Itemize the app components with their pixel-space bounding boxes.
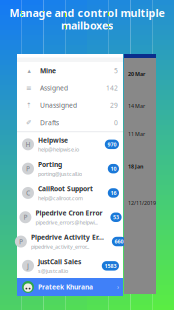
staticText: 12/11/2019: [128, 199, 156, 207]
staticText: pipedrive_errors@helpwi...: [35, 219, 97, 226]
staticText: Helpwise: [38, 136, 68, 144]
button[interactable]: Prateek Khurana: [17, 278, 123, 296]
button[interactable]: H: [17, 132, 123, 156]
staticText: 53: [113, 214, 119, 221]
staticText: ⇡: [26, 101, 32, 109]
staticText: P: [23, 213, 27, 222]
staticText: Pipedrive Cron Error: [35, 208, 102, 217]
button[interactable]: ✐: [17, 114, 123, 131]
staticText: H: [25, 140, 30, 149]
staticText: 18 Jan: [128, 163, 143, 170]
button[interactable]: ≡: [17, 79, 123, 97]
staticText: Mine: [40, 66, 56, 75]
staticText: 14 Mar: [128, 102, 145, 110]
staticText: 11 Mar: [128, 130, 145, 138]
staticText: 20 Mar: [128, 70, 145, 78]
staticText: 5: [114, 66, 118, 75]
staticText: 16: [110, 189, 116, 196]
staticText: JustCall Sales: [38, 257, 81, 266]
staticText: mailboxes: [61, 18, 113, 32]
button[interactable]: J: [17, 254, 123, 278]
staticText: 660: [114, 238, 123, 245]
staticText: ›: [117, 283, 119, 291]
staticText: help@helpwise.io: [38, 146, 79, 153]
staticText: Manage and control multiple: [9, 6, 164, 20]
button[interactable]: ▴: [17, 62, 123, 79]
button[interactable]: P: [14, 205, 126, 229]
staticText: help@callroot.com: [38, 195, 83, 202]
staticText: Porting: [38, 160, 62, 169]
staticText: Assigned: [40, 83, 68, 92]
staticText: porting@justcall.io: [38, 170, 82, 177]
staticText: Drafts: [40, 118, 59, 127]
staticText: CallRoot Support: [38, 184, 93, 193]
button[interactable]: P: [10, 229, 130, 254]
staticText: P: [26, 164, 30, 173]
staticText: ✐: [26, 119, 32, 126]
staticText: ▴: [27, 67, 30, 74]
staticText: pipedrive_activity_error...: [31, 243, 89, 250]
staticText: s@justcall.io: [38, 267, 68, 275]
staticText: C: [26, 188, 30, 197]
button[interactable]: C: [17, 181, 123, 205]
staticText: J: [27, 261, 29, 270]
staticText: 29: [110, 101, 118, 110]
staticText: 10: [110, 165, 116, 172]
staticText: 970: [107, 141, 116, 148]
staticText: Unassigned: [40, 101, 77, 110]
button[interactable]: P: [17, 156, 123, 181]
staticText: 0: [114, 118, 118, 127]
button[interactable]: ⇡: [17, 97, 123, 114]
staticText: Pipedrive Activity Er...: [31, 233, 104, 242]
staticText: 142: [106, 83, 118, 92]
staticText: P: [19, 237, 23, 246]
staticText: ≡: [26, 84, 32, 92]
staticText: Prateek Khurana: [38, 283, 93, 291]
staticText: 1583: [104, 262, 116, 269]
